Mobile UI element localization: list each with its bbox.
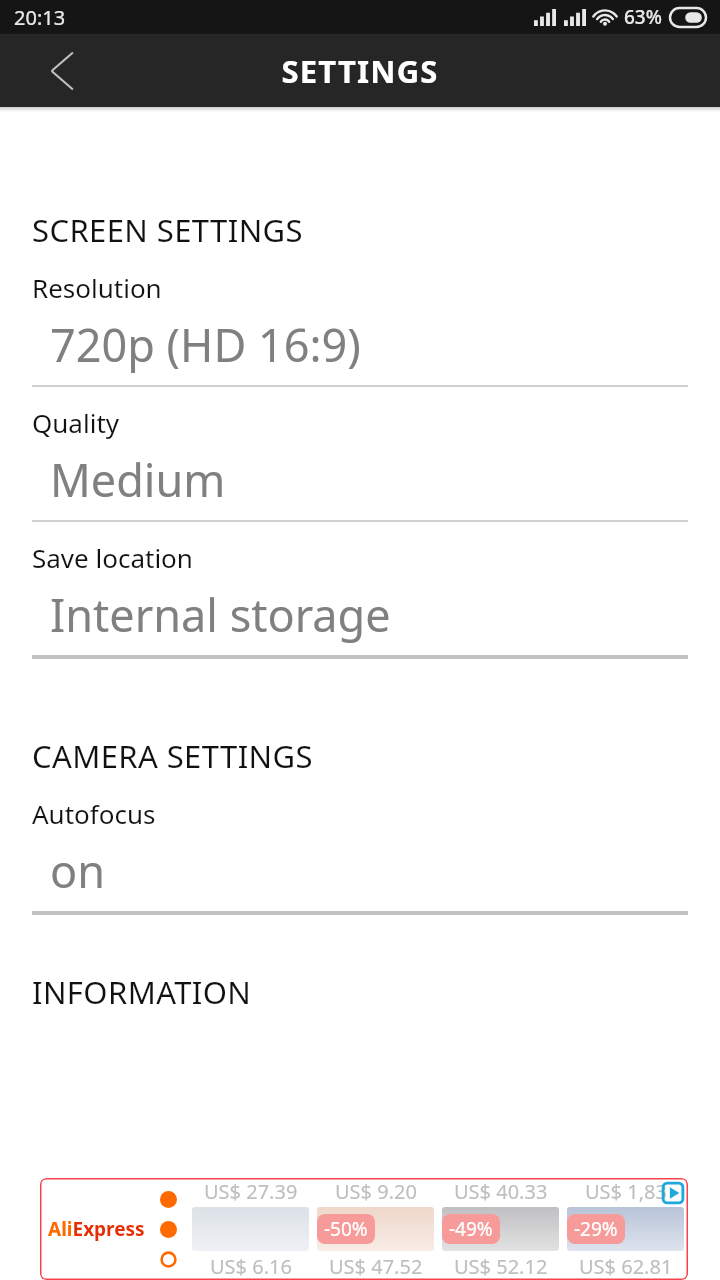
staticText: Quality [32,405,120,440]
staticText: SCREEN SETTINGS [32,209,303,251]
button[interactable]: AliExpress advertisement [40,1178,688,1280]
staticText: US$ 1,83 [585,1178,667,1205]
staticText: CAMERA SETTINGS [32,735,313,777]
staticText: Save location [32,540,193,575]
staticText: Medium [50,449,226,510]
button[interactable]: Ad choices [660,1180,686,1206]
button[interactable]: Autofocus [0,796,720,911]
staticText: US$ 47.52 [329,1253,423,1280]
staticText: 63% [624,4,662,30]
staticText: -29% [574,1216,618,1242]
staticText: Resolution [32,270,162,305]
button[interactable]: Save location [0,540,720,655]
button[interactable]: Resolution [0,270,720,385]
staticText: Internal storage [50,584,391,645]
button[interactable]: Back [40,49,84,93]
staticText: US$ 9.20 [335,1178,417,1205]
button[interactable]: Quality [0,405,720,520]
staticText: Autofocus [32,796,156,831]
staticText: US$ 6.16 [210,1253,292,1280]
staticText: SETTINGS [281,50,439,92]
staticText: US$ 40.33 [454,1178,548,1205]
staticText: -50% [324,1216,368,1242]
staticText: AliExpress [48,1216,145,1242]
staticText: on [50,840,106,901]
staticText: US$ 52.12 [454,1253,548,1280]
staticText: 720p (HD 16:9) [50,314,361,375]
staticText: US$ 62.81 [579,1253,673,1280]
staticText: -49% [449,1216,493,1242]
staticText: INFORMATION [32,971,252,1013]
staticText: 20:13 [14,4,66,31]
staticText: US$ 27.39 [204,1178,298,1205]
